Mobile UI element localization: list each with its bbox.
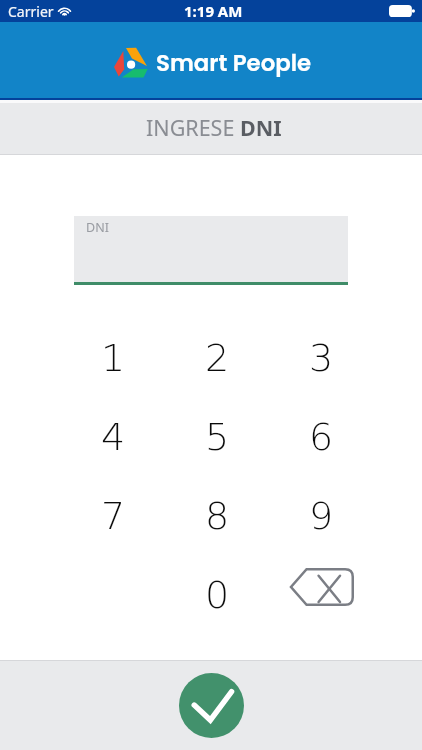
staticText: 9 xyxy=(309,494,334,538)
staticText: 6 xyxy=(309,415,334,459)
button[interactable]: 8 xyxy=(165,476,269,555)
button[interactable]: Backspace xyxy=(269,555,373,634)
button[interactable]: 4 xyxy=(61,397,165,476)
button[interactable]: 5 xyxy=(165,397,269,476)
button[interactable]: 6 xyxy=(269,397,373,476)
button[interactable]: 3 xyxy=(269,318,373,397)
button[interactable]: 1 xyxy=(61,318,165,397)
staticText: 5 xyxy=(205,415,230,459)
staticText: 2 xyxy=(205,336,230,380)
staticText: 8 xyxy=(205,494,230,538)
staticText: INGRESE DNI xyxy=(146,113,282,142)
staticText: 1 xyxy=(101,336,126,380)
button[interactable]: 7 xyxy=(61,476,165,555)
staticText: 4 xyxy=(101,415,126,459)
staticText: 7 xyxy=(101,494,126,538)
staticText: Smart People xyxy=(156,47,312,79)
staticText: DNI xyxy=(86,219,109,236)
button[interactable]: Confirm xyxy=(179,673,244,738)
button[interactable]: 0 xyxy=(165,555,269,634)
staticText: 3 xyxy=(309,336,334,380)
staticText: 1:19 AM xyxy=(184,1,243,21)
button[interactable]: 2 xyxy=(165,318,269,397)
staticText: Carrier xyxy=(8,2,54,21)
button[interactable]: DNI xyxy=(74,216,348,282)
button[interactable]: 9 xyxy=(269,476,373,555)
staticText: 0 xyxy=(205,573,230,617)
